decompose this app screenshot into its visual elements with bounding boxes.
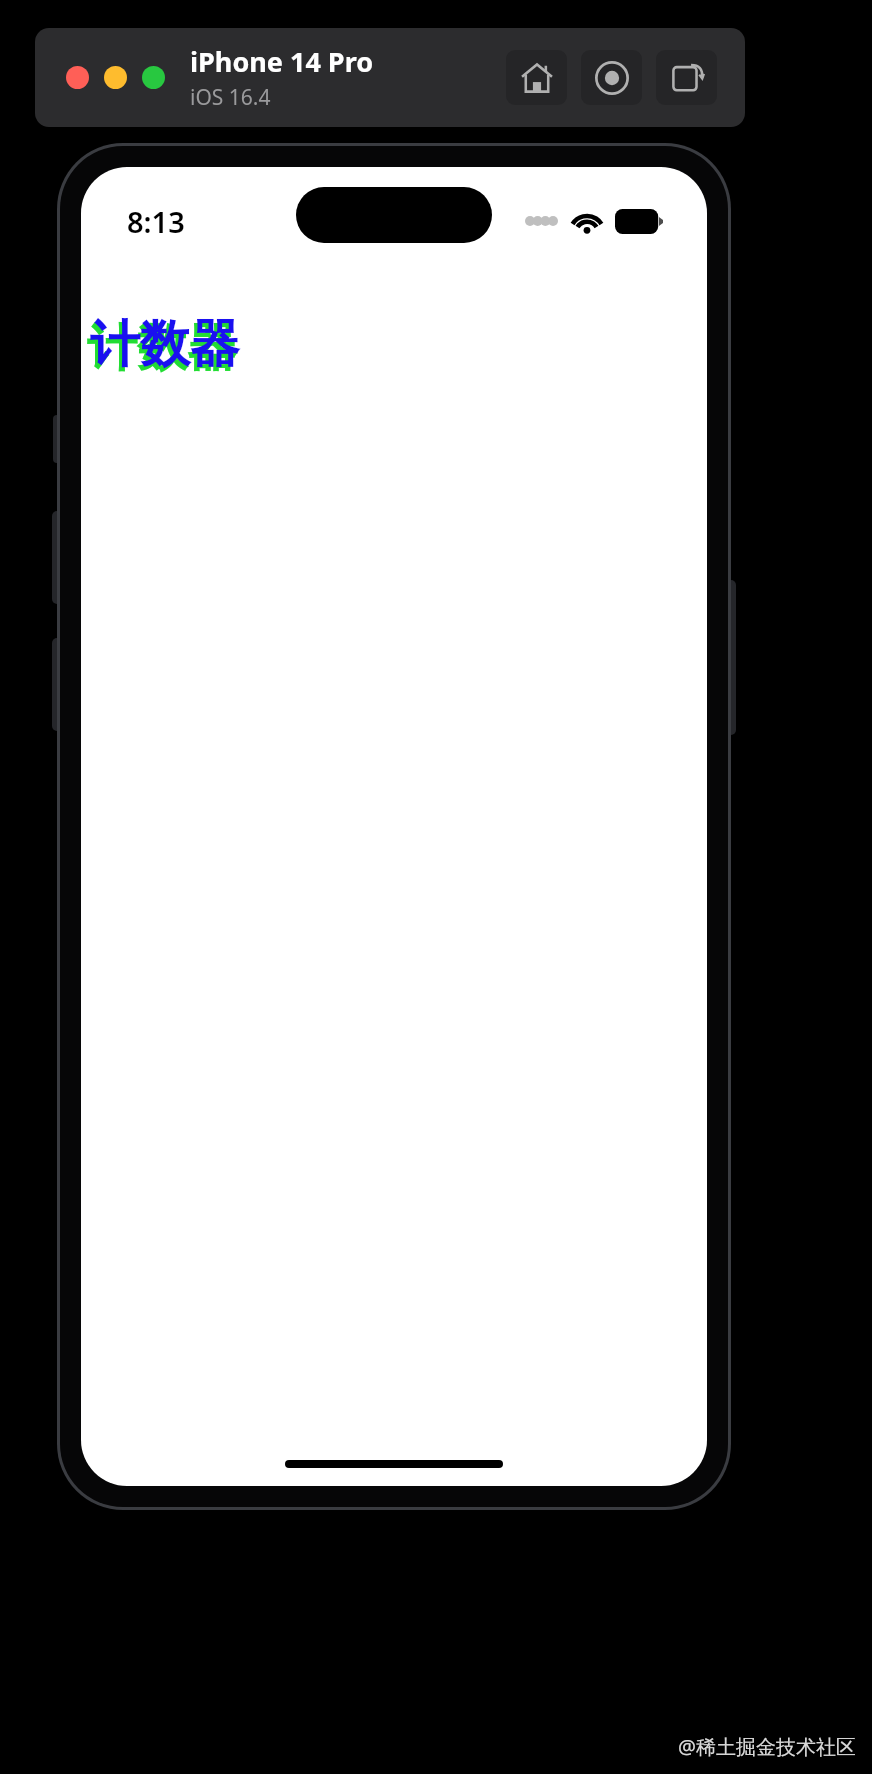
button[interactable]: Zoom [142,66,165,89]
button[interactable]: Close [66,66,89,89]
button[interactable]: Minimize [104,66,127,89]
button[interactable]: Home [506,50,567,105]
button[interactable]: Rotate device [656,50,717,105]
staticText: @稀土掘金技术社区 [678,1733,856,1760]
button[interactable]: Record screen [581,50,642,105]
button[interactable]: 计数器 [87,313,237,376]
staticText: iPhone 14 Pro [190,43,374,80]
staticText: 计数器 [87,317,237,380]
staticText: 8:13 [127,202,185,241]
staticText: 计数器 [90,313,240,376]
staticText: iOS 16.4 [190,83,271,112]
